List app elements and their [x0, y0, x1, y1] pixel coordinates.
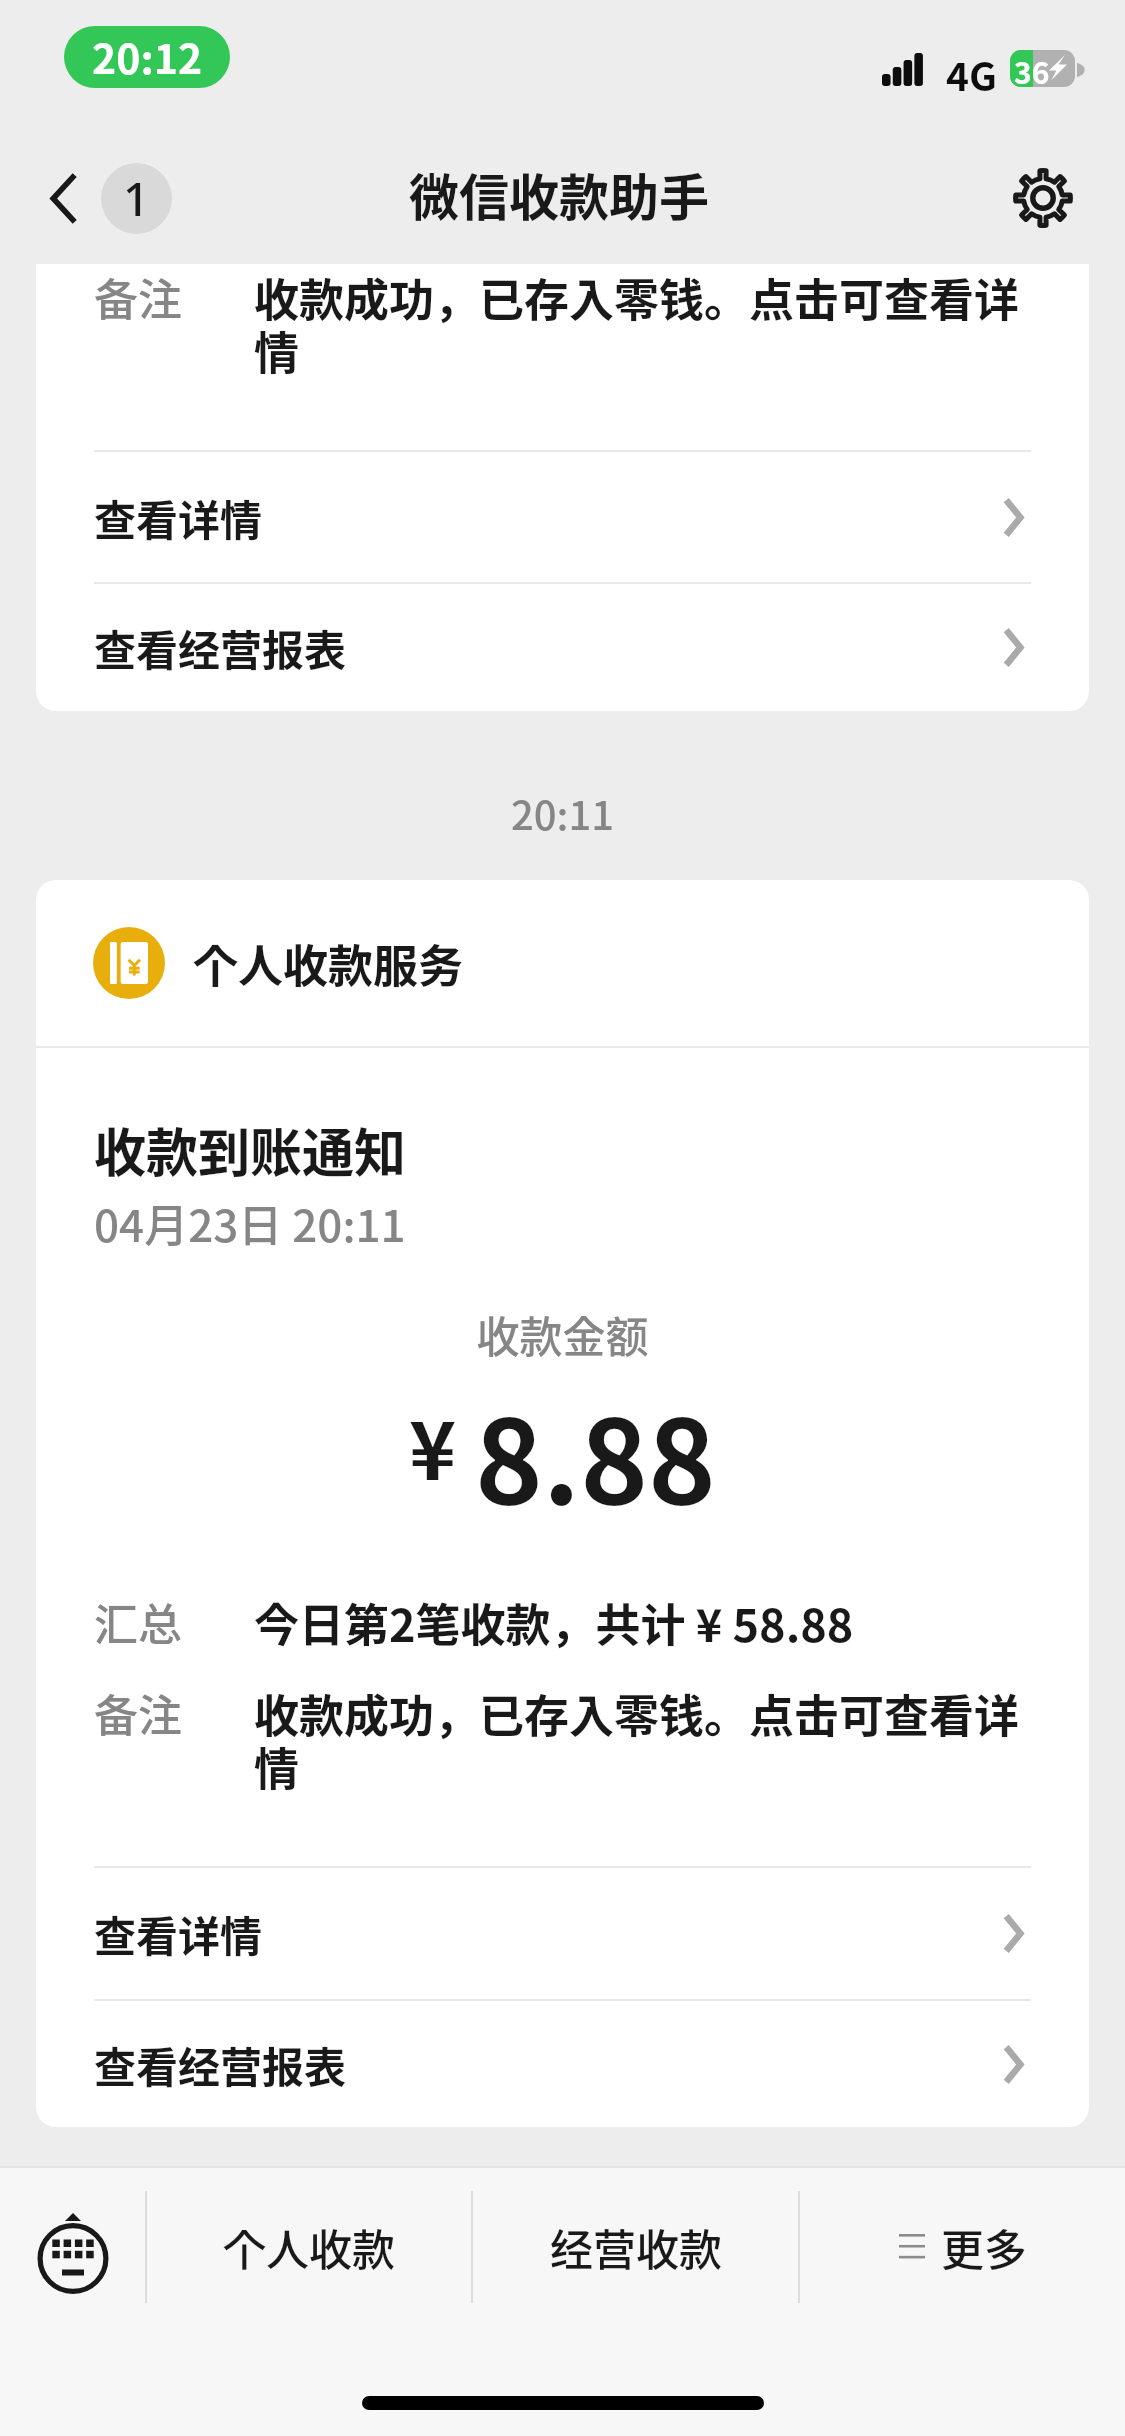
button[interactable]: 查看经营报表: [36, 584, 1089, 711]
staticText: 今日第2笔收款，共计 ¥ 58.88: [254, 1590, 854, 1655]
staticText: 查看经营报表: [94, 2034, 347, 2095]
staticText: 20:11: [0, 784, 1125, 842]
button[interactable]: Settings: [997, 152, 1089, 244]
staticText: 36: [1014, 50, 1050, 86]
staticText: 汇总: [94, 1590, 182, 1654]
staticText: 收款到账通知: [94, 1112, 407, 1187]
staticText: 20:12: [92, 26, 203, 85]
staticText: 查看经营报表: [94, 617, 347, 678]
button[interactable]: 查看详情: [36, 1868, 1089, 1999]
staticText: 备注: [94, 1681, 182, 1745]
button[interactable]: 查看详情: [36, 452, 1089, 582]
staticText: 微信收款助手: [409, 158, 709, 230]
staticText: 04月23日 20:11: [94, 1191, 406, 1255]
staticText: 个人收款: [223, 2216, 395, 2278]
button[interactable]: 查看经营报表: [36, 2001, 1089, 2127]
staticText: 8.88: [475, 1371, 716, 1538]
staticText: 查看详情: [94, 487, 263, 548]
other: Back: [25, 154, 101, 242]
staticText: ¥: [409, 1387, 457, 1503]
staticText: 收款金额: [83, 1303, 1042, 1365]
staticText: 个人收款服务: [193, 931, 464, 996]
staticText: 1: [123, 167, 150, 230]
staticText: 收款成功，已存入零钱。点击可查看详情: [254, 265, 1049, 383]
button[interactable]: Keyboard: [0, 2168, 145, 2326]
button[interactable]: 经营收款: [473, 2168, 798, 2326]
button[interactable]: 更多: [800, 2168, 1125, 2326]
staticText: 4G: [946, 46, 997, 102]
staticText: 备注: [94, 265, 182, 329]
staticText: 经营收款: [550, 2216, 722, 2278]
button[interactable]: Back: [25, 154, 172, 242]
staticText: 更多: [941, 2216, 1027, 2278]
staticText: 收款成功，已存入零钱。点击可查看详情: [254, 1681, 1049, 1799]
button[interactable]: 个人收款: [147, 2168, 471, 2326]
staticText: 查看详情: [94, 1903, 263, 1964]
